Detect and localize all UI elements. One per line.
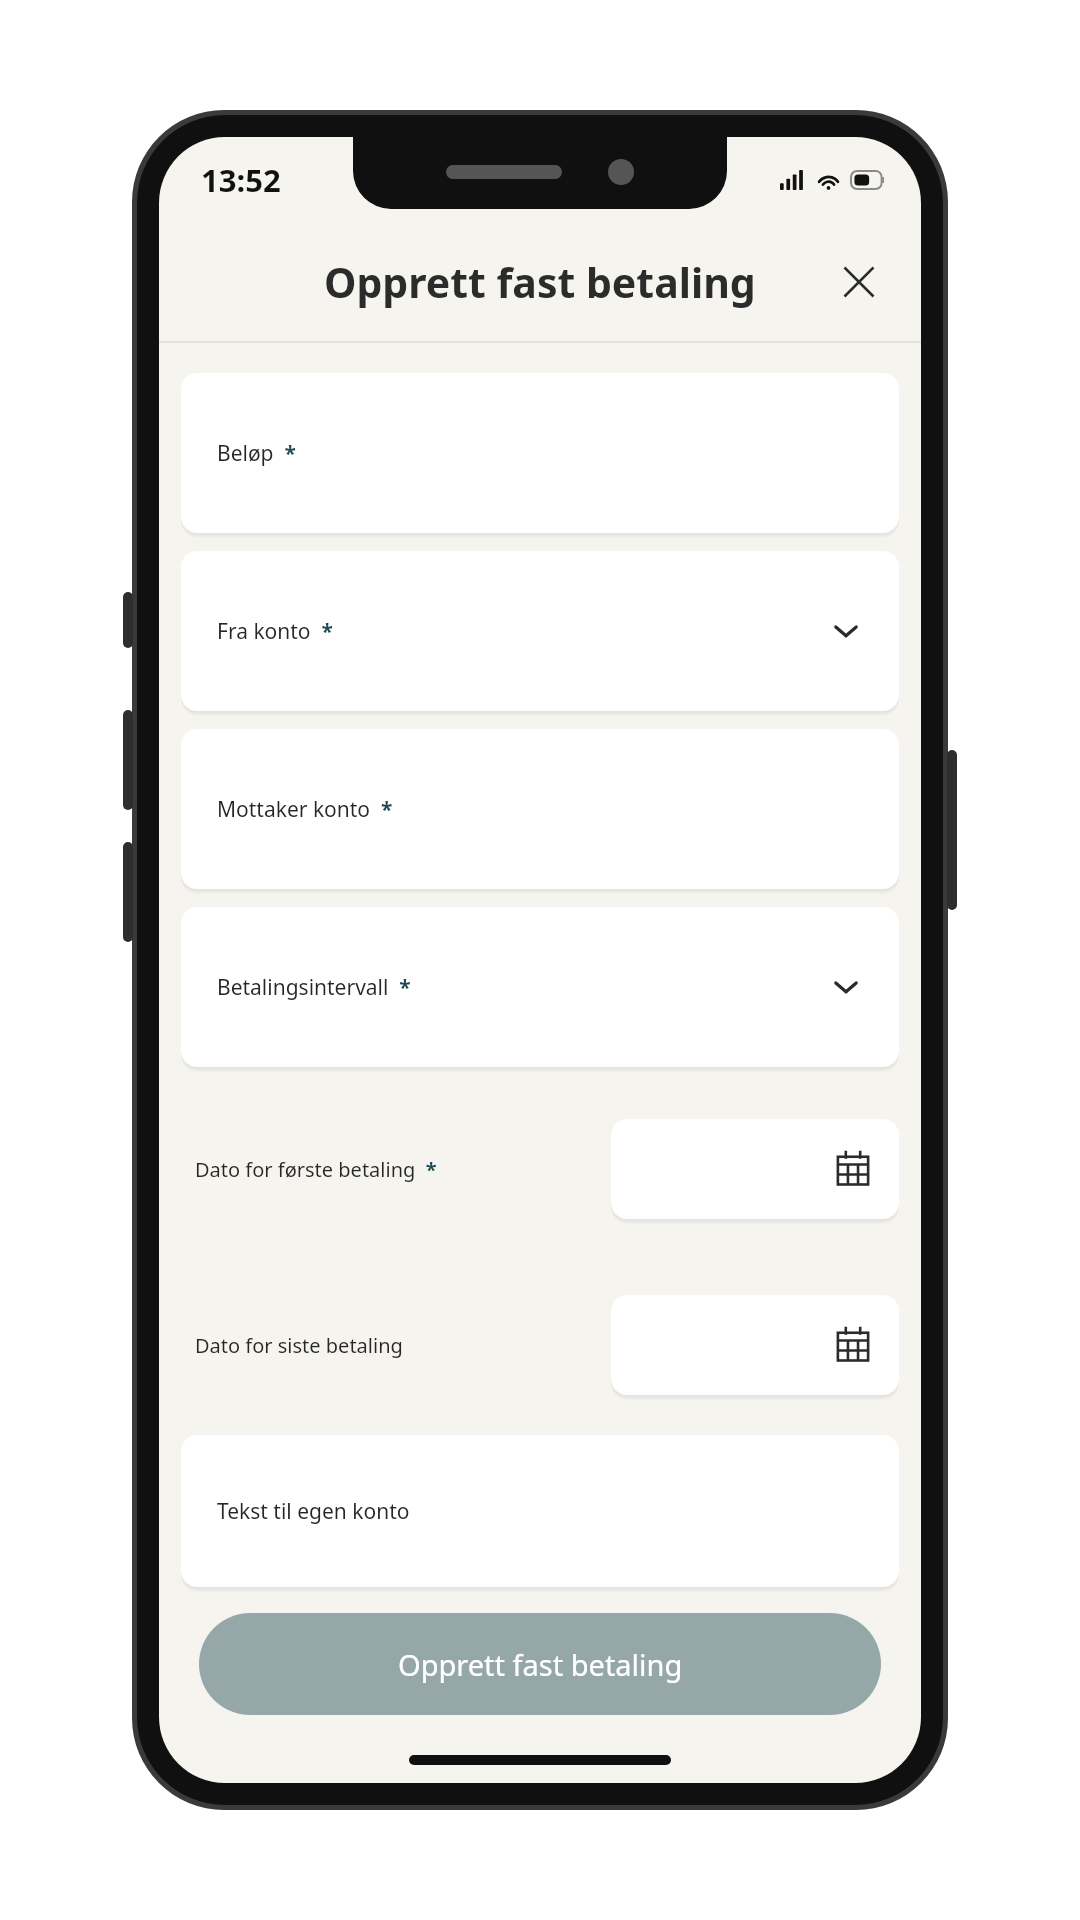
staticText: Dato for siste betaling — [195, 1332, 403, 1359]
staticText: Dato for første betaling * — [195, 1156, 437, 1183]
button[interactable]: Beløp * — [181, 373, 899, 533]
staticText: 13:52 — [201, 159, 281, 201]
button[interactable]: Dato for første betaling * — [181, 1119, 899, 1219]
staticText: Opprett fast betaling — [324, 254, 756, 310]
button[interactable]: Betalingsintervall * — [181, 907, 899, 1067]
staticText: Tekst til egen konto — [217, 1497, 410, 1526]
button[interactable]: Mottaker konto * — [181, 729, 899, 889]
staticText: Betalingsintervall * — [217, 973, 411, 1002]
staticText: Mottaker konto * — [217, 795, 393, 824]
button[interactable]: Lukk — [821, 244, 897, 320]
button[interactable]: Tekst til egen konto — [181, 1435, 899, 1587]
button[interactable]: Dato for siste betaling — [181, 1295, 899, 1395]
staticText: Beløp * — [217, 439, 296, 468]
staticText: Opprett fast betaling — [398, 1645, 683, 1684]
button[interactable]: Fra konto * — [181, 551, 899, 711]
staticText: Fra konto * — [217, 617, 333, 646]
button[interactable]: Opprett fast betaling — [199, 1613, 881, 1715]
